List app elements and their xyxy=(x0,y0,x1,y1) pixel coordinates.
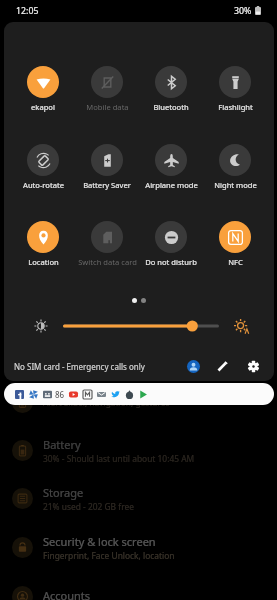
button[interactable]: Accounts xyxy=(0,572,277,600)
button[interactable]: Airplane mode xyxy=(139,144,203,190)
button[interactable]: ekapol xyxy=(11,66,75,112)
staticText: Flashlight xyxy=(218,102,253,112)
staticText: 21% used - 202 GB free xyxy=(43,501,134,512)
staticText: Location xyxy=(28,257,59,267)
staticText: Airplane mode xyxy=(145,180,198,190)
staticText: Switch data card xyxy=(78,257,137,267)
button[interactable]: Location xyxy=(11,221,75,267)
staticText: ekapol xyxy=(31,102,55,112)
button[interactable]: Night mode xyxy=(203,144,267,190)
button[interactable]: Auto brightness xyxy=(233,315,249,337)
button[interactable]: Do not disturb xyxy=(139,221,203,267)
staticText: Accounts xyxy=(43,588,91,600)
staticText: 30% - Should last until about 10:45 AM xyxy=(43,453,195,464)
staticText: Auto-rotate xyxy=(23,180,64,190)
staticText: No SIM card - Emergency calls only xyxy=(14,361,145,372)
button[interactable]: Storage xyxy=(0,474,277,522)
button[interactable]: Auto-rotate xyxy=(11,144,75,190)
button[interactable]: Mobile data xyxy=(75,66,139,112)
staticText: 30% xyxy=(234,5,252,17)
staticText: Battery Saver xyxy=(83,180,131,190)
staticText: Night mode xyxy=(214,180,257,190)
staticText: Storage xyxy=(43,485,84,500)
button[interactable]: Account xyxy=(183,356,203,376)
button[interactable]: Notifications xyxy=(4,383,274,405)
staticText: Mobile data xyxy=(86,102,129,112)
button[interactable]: Bluetooth xyxy=(139,66,203,112)
button[interactable]: Flashlight xyxy=(203,66,267,112)
button[interactable]: Settings xyxy=(243,356,263,376)
staticText: Security & lock screen xyxy=(43,534,156,549)
staticText: 12:05 xyxy=(16,5,39,17)
button[interactable]: Battery Saver xyxy=(75,144,139,190)
button[interactable]: Switch data card xyxy=(75,221,139,267)
button[interactable]: Brightness xyxy=(34,315,48,337)
button[interactable]: Alert Slider, navigation, gestures xyxy=(0,378,277,426)
staticText: Battery xyxy=(43,437,81,452)
staticText: Bluetooth xyxy=(153,102,189,112)
button[interactable]: Battery xyxy=(0,426,277,474)
button[interactable]: Edit tiles xyxy=(213,356,233,376)
button[interactable]: NFC xyxy=(203,221,267,267)
staticText: 86 xyxy=(55,389,65,400)
staticText: Fingerprint, Face Unlock, location xyxy=(43,550,175,561)
button[interactable]: Security & lock screen xyxy=(0,523,277,571)
staticText: Do not disturb xyxy=(145,257,197,267)
staticText: NFC xyxy=(228,257,243,267)
staticText: Alert Slider, navigation, gestures xyxy=(43,397,170,408)
